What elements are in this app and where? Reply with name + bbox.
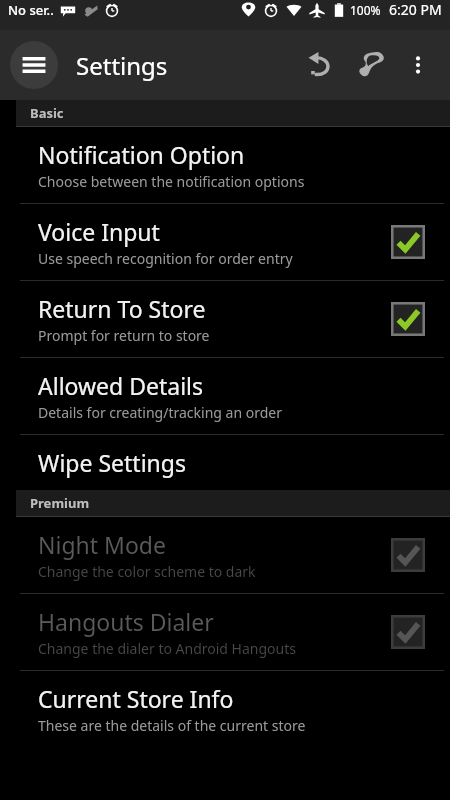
button[interactable]: Current Store Info [0, 671, 450, 747]
staticText: These are the details of the current sto… [38, 716, 306, 735]
button[interactable]: Night Mode [0, 517, 450, 593]
staticText: 6:20 PM [389, 0, 442, 19]
button[interactable]: Hangouts Dialer [0, 594, 450, 670]
button[interactable]: Voice Input [0, 204, 450, 280]
staticText: Voice Input [38, 216, 160, 247]
staticText: Prompt for return to store [38, 326, 210, 345]
button[interactable]: More options [398, 45, 438, 85]
button[interactable]: Checked [390, 224, 426, 260]
staticText: Change the color scheme to dark [38, 562, 256, 581]
staticText: Premium [30, 494, 90, 512]
button[interactable]: Allowed Details [0, 358, 450, 434]
button[interactable]: Undo [298, 43, 342, 87]
staticText: Hangouts Dialer [38, 606, 214, 637]
staticText: Night Mode [38, 529, 166, 560]
staticText: Basic [30, 104, 64, 122]
staticText: Wipe Settings [38, 447, 186, 478]
button[interactable]: Open navigation drawer [10, 41, 58, 89]
staticText: Change the dialer to Android Hangouts [38, 639, 296, 658]
button[interactable]: Wipe Settings [0, 435, 450, 490]
staticText: Notification Option [38, 139, 245, 170]
button[interactable]: Notification Option [0, 127, 450, 203]
staticText: Settings [76, 49, 168, 82]
button[interactable]: Checked [390, 301, 426, 337]
staticText: No ser.. [8, 1, 54, 19]
staticText: 100% [350, 2, 381, 18]
staticText: Choose between the notification options [38, 172, 305, 191]
staticText: Allowed Details [38, 370, 204, 401]
button[interactable]: Checked [390, 537, 426, 573]
button[interactable]: Checked [390, 614, 426, 650]
staticText: Current Store Info [38, 683, 234, 714]
staticText: Use speech recognition for order entry [38, 249, 293, 268]
button[interactable]: Return To Store [0, 281, 450, 357]
staticText: Details for creating/tracking an order [38, 403, 282, 422]
button[interactable]: Call [350, 43, 394, 87]
staticText: Return To Store [38, 293, 206, 324]
